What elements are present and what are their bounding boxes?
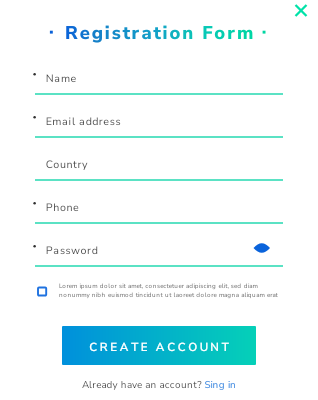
button[interactable]: Close xyxy=(288,0,314,26)
button[interactable] xyxy=(62,326,256,365)
button[interactable]: Accept terms and conditions xyxy=(33,281,51,299)
button[interactable]: Show password xyxy=(248,240,276,266)
button[interactable]: Phone xyxy=(30,197,288,229)
button[interactable]: Password xyxy=(30,240,288,272)
button[interactable]: Email address xyxy=(30,111,288,143)
button[interactable]: Sign in xyxy=(198,379,242,393)
button[interactable]: Name xyxy=(30,68,288,100)
button[interactable]: Country xyxy=(30,154,288,186)
